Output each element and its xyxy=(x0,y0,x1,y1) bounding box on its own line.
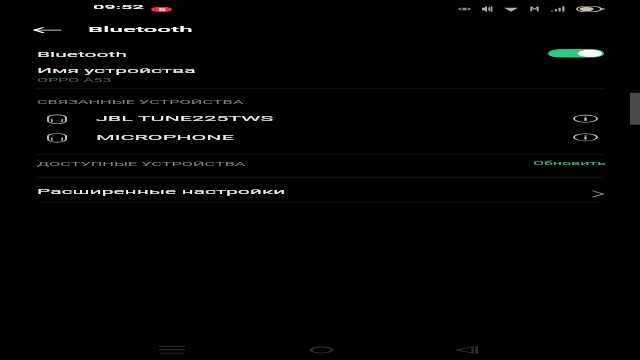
staticText: JBL TUNE225TWS xyxy=(96,115,274,123)
button[interactable]: Имя устройства xyxy=(0,66,640,101)
button[interactable]: Home xyxy=(297,339,345,360)
staticText: OPPO A53 xyxy=(37,78,112,83)
staticText: ДОСТУПНЫЕ УСТРОЙСТВА xyxy=(37,161,246,167)
button[interactable]: JBL TUNE225TWS xyxy=(0,112,640,131)
staticText: 09:52 xyxy=(93,3,144,10)
staticText: Bluetooth xyxy=(88,25,193,34)
staticText: Bluetooth xyxy=(37,51,127,59)
staticText: MICROPHONE xyxy=(96,133,234,141)
button[interactable]: Обновить xyxy=(533,161,606,167)
staticText: Расширенные настройки xyxy=(37,188,286,196)
button[interactable]: Back xyxy=(443,339,491,360)
button[interactable]: Back xyxy=(20,20,74,41)
button[interactable]: Bluetooth xyxy=(0,49,640,68)
button[interactable]: Device settings xyxy=(563,110,607,127)
staticText: 5 xyxy=(158,7,166,12)
button[interactable]: Device settings xyxy=(563,129,607,145)
button[interactable]: MICROPHONE xyxy=(0,131,640,149)
button[interactable]: Recent apps xyxy=(148,339,196,360)
staticText: СВЯЗАННЫЕ УСТРОЙСТВА xyxy=(37,99,244,105)
button[interactable]: Расширенные настройки xyxy=(0,183,640,204)
staticText: Обновить xyxy=(533,161,606,167)
staticText: Имя устройства xyxy=(37,67,196,75)
